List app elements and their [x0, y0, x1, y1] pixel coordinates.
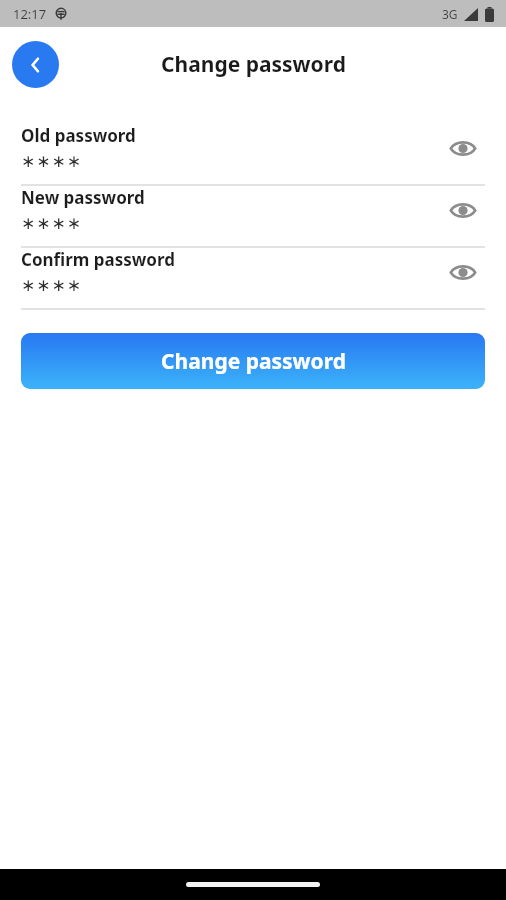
button[interactable]: Home [186, 882, 320, 887]
staticText: ∗∗∗∗ [21, 151, 82, 171]
staticText: 12:17 [13, 5, 47, 23]
staticText: Confirm password [21, 248, 176, 271]
staticText: 3G [442, 6, 458, 22]
button[interactable]: Back [12, 41, 59, 88]
staticText: ∗∗∗∗ [21, 213, 82, 233]
button[interactable]: Show password [441, 188, 485, 232]
button[interactable]: New password [0, 186, 506, 233]
button[interactable]: Show password [441, 250, 485, 294]
button[interactable]: Old password [0, 124, 506, 171]
staticText: Old password [21, 124, 136, 147]
button[interactable]: Confirm password [0, 248, 506, 295]
staticText: Change password [161, 50, 346, 79]
staticText: ∗∗∗∗ [21, 275, 82, 295]
staticText: New password [21, 186, 145, 209]
staticText: Change password [161, 347, 346, 376]
button[interactable]: Show password [441, 126, 485, 170]
button[interactable]: Change password [21, 333, 485, 389]
